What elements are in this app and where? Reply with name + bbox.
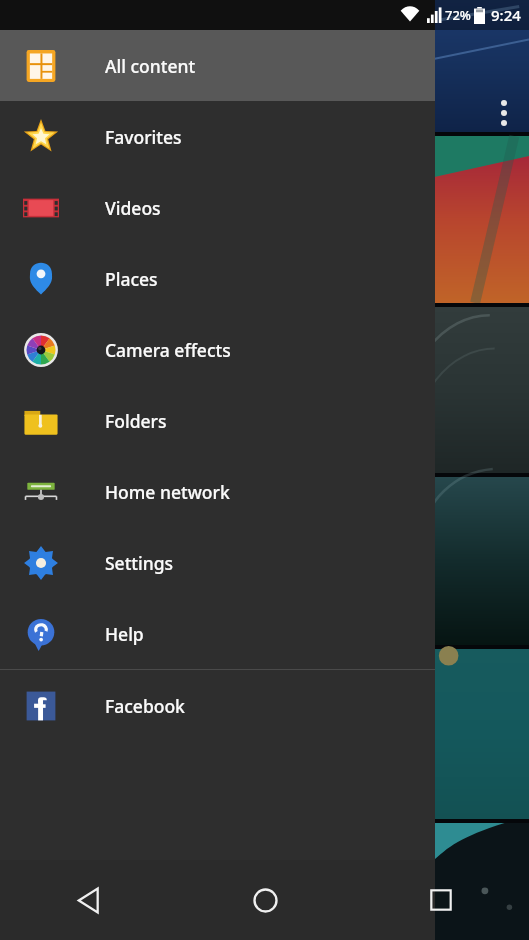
button[interactable]: Home network [0,456,435,527]
button[interactable]: Places [0,243,435,314]
button[interactable]: Back [0,860,177,940]
button[interactable]: Favorites [0,101,435,172]
staticText: 72% [445,6,471,24]
button[interactable]: Facebook [0,670,435,741]
staticText: Favorites [105,125,182,149]
button[interactable]: Recent apps [353,860,529,940]
staticText: Videos [105,196,161,220]
staticText: Settings [105,551,174,575]
button[interactable]: Camera effects [0,314,435,385]
button[interactable]: Home [177,860,353,940]
button[interactable]: Settings [0,527,435,598]
staticText: Folders [105,409,167,433]
button[interactable]: Help [0,598,435,669]
staticText: Home network [105,480,230,504]
staticText: Help [105,622,144,646]
button[interactable]: Videos [0,172,435,243]
staticText: All content [105,54,196,78]
staticText: 9:24 [491,5,521,25]
button[interactable]: More options [501,100,507,126]
staticText: Places [105,267,158,291]
staticText: Facebook [105,694,185,718]
button[interactable]: Folders [0,385,435,456]
button[interactable]: All content [0,30,435,101]
staticText: Camera effects [105,338,231,362]
